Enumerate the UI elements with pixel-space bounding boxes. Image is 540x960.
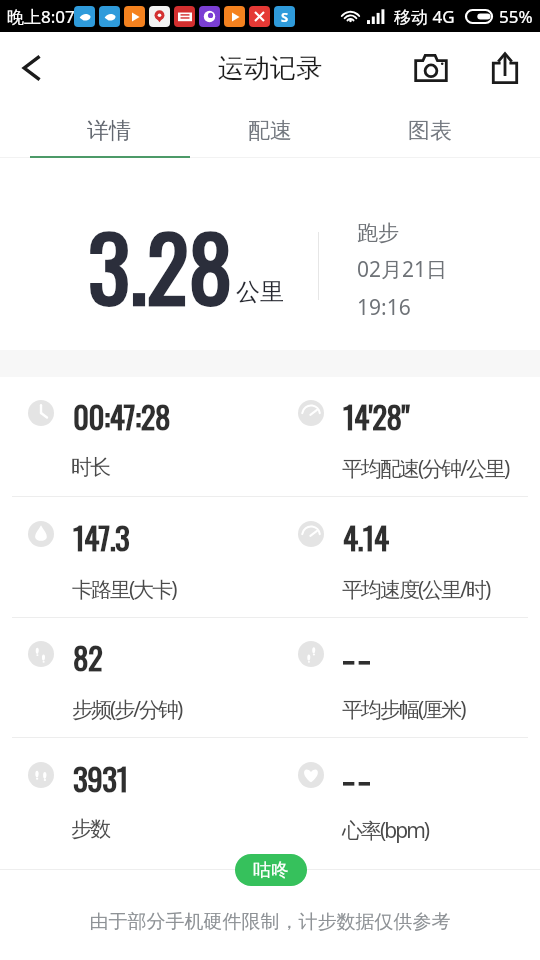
staticText: 3931 bbox=[73, 755, 128, 801]
staticText: 4.14 bbox=[343, 514, 389, 560]
staticText: S bbox=[281, 8, 289, 26]
staticText: 时长 bbox=[72, 454, 110, 480]
button[interactable]: Back bbox=[5, 32, 57, 104]
staticText: 55% bbox=[499, 5, 533, 28]
staticText: 步数 bbox=[72, 816, 110, 842]
staticText: 卡路里(大卡) bbox=[72, 575, 176, 604]
staticText: 移动 4G bbox=[394, 5, 455, 28]
staticText: 82 bbox=[73, 634, 103, 680]
staticText: 运动记录 bbox=[218, 52, 322, 85]
staticText: 心率(bpm) bbox=[342, 816, 429, 845]
staticText: 图表 bbox=[408, 117, 452, 145]
staticText: 配速 bbox=[248, 117, 292, 145]
button[interactable]: 4.14 bbox=[270, 498, 540, 618]
staticText: 3.28 bbox=[88, 200, 233, 330]
button[interactable]: 平均步幅(厘米) bbox=[270, 618, 540, 738]
button[interactable]: 14'28" bbox=[270, 377, 540, 497]
button[interactable]: 3931 bbox=[0, 739, 270, 859]
button[interactable]: Share bbox=[477, 32, 532, 104]
staticText: 由于部分手机硬件限制，计步数据仅供参考 bbox=[0, 910, 540, 934]
staticText: 晚上8:07 bbox=[7, 5, 75, 28]
button[interactable]: 心率(bpm) bbox=[270, 739, 540, 859]
button[interactable]: 图表 bbox=[370, 104, 490, 158]
button[interactable]: 00:47:28 bbox=[0, 377, 270, 497]
staticText: 公里 bbox=[236, 277, 284, 307]
staticText: 平均步幅(厘米) bbox=[342, 695, 465, 724]
button[interactable]: 详情 bbox=[49, 104, 169, 158]
staticText: 详情 bbox=[87, 117, 131, 145]
staticText: 14'28" bbox=[343, 393, 410, 439]
button[interactable]: 咕咚 bbox=[235, 854, 307, 886]
staticText: 02月21日 bbox=[357, 255, 448, 284]
button[interactable]: 147.3 bbox=[0, 498, 270, 618]
staticText: 跑步 bbox=[357, 220, 399, 246]
staticText: 平均速度(公里/时) bbox=[342, 575, 490, 604]
staticText: 147.3 bbox=[73, 514, 130, 560]
staticText: 19:16 bbox=[357, 293, 411, 322]
staticText: 咕咚 bbox=[253, 859, 289, 882]
button[interactable]: 82 bbox=[0, 618, 270, 738]
button[interactable]: Camera bbox=[399, 32, 463, 104]
button[interactable]: 配速 bbox=[210, 104, 330, 158]
staticText: 平均配速(分钟/公里) bbox=[342, 454, 509, 483]
staticText: 00:47:28 bbox=[73, 393, 170, 439]
staticText: 步频(步/分钟) bbox=[72, 695, 182, 724]
